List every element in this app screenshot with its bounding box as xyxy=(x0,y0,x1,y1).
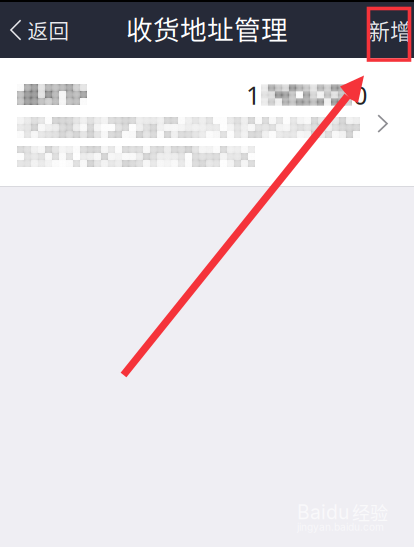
staticText: 0 xyxy=(353,78,367,112)
staticText: 1 xyxy=(246,78,260,112)
staticText: 收货地址管理 xyxy=(126,9,288,47)
staticText: 经验 xyxy=(352,499,388,525)
staticText: Baidu xyxy=(297,500,349,524)
button[interactable]: 1 xyxy=(0,58,414,186)
button[interactable]: 新增 xyxy=(366,2,414,58)
staticText: 返回 xyxy=(27,15,69,45)
staticText: 新增 xyxy=(368,14,412,46)
button[interactable]: 返回 xyxy=(0,2,83,58)
